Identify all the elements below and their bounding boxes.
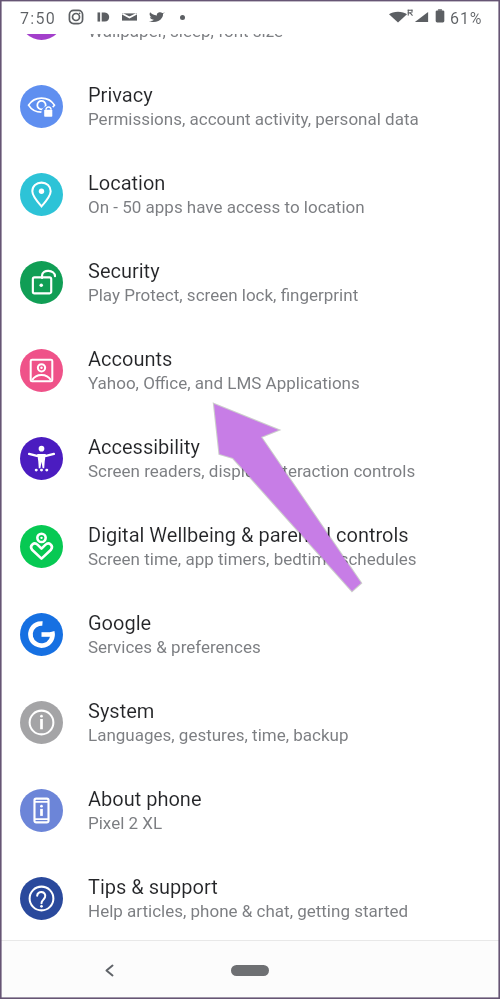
button[interactable]: System (0, 678, 500, 766)
button[interactable]: Tips & support (0, 854, 500, 942)
staticText: Permissions, account activity, personal … (88, 109, 419, 129)
staticText: Google (88, 611, 152, 634)
staticText: Accounts (88, 347, 173, 370)
staticText: 61% (450, 9, 483, 28)
staticText: Accessibility (88, 435, 200, 458)
button[interactable]: Home (219, 954, 281, 986)
staticText: Security (88, 259, 160, 282)
button[interactable]: Privacy (0, 62, 500, 150)
button[interactable]: Back (90, 951, 128, 989)
staticText: Languages, gestures, time, backup (88, 725, 349, 745)
button[interactable]: Location (0, 150, 500, 238)
staticText: Wallpaper, sleep, font size (88, 21, 284, 41)
staticText: Display (88, 0, 153, 18)
staticText: Play Protect, screen lock, fingerprint (88, 285, 359, 305)
staticText: About phone (88, 787, 202, 810)
staticText: Help articles, phone & chat, getting sta… (88, 901, 409, 921)
staticText: Screen readers, display, interaction con… (88, 461, 416, 481)
staticText: System (88, 699, 155, 722)
button[interactable]: Accounts (0, 326, 500, 414)
staticText: On - 50 apps have access to location (88, 197, 365, 217)
staticText: Tips & support (88, 875, 218, 898)
button[interactable]: About phone (0, 766, 500, 854)
button[interactable]: Google (0, 590, 500, 678)
button[interactable]: Security (0, 238, 500, 326)
staticText: 7:50 (20, 9, 57, 28)
staticText: Location (88, 171, 166, 194)
staticText: Screen time, app timers, bedtime schedul… (88, 549, 417, 569)
button[interactable]: Accessibility (0, 414, 500, 502)
staticText: Privacy (88, 83, 153, 106)
staticText: Services & preferences (88, 637, 261, 657)
staticText: Yahoo, Office, and LMS Applications (88, 373, 360, 393)
staticText: Digital Wellbeing & parental controls (88, 523, 409, 546)
staticText: Pixel 2 XL (88, 813, 163, 833)
button[interactable]: Digital Wellbeing & parental controls (0, 502, 500, 590)
button[interactable]: Display (0, 0, 500, 62)
